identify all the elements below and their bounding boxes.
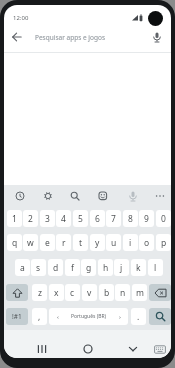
button[interactable]	[70, 191, 80, 201]
staticText: f	[71, 262, 74, 274]
staticText: n	[120, 287, 126, 299]
staticText: c	[70, 287, 75, 299]
button[interactable]: n	[115, 284, 130, 301]
staticText: Português (BR)	[71, 313, 107, 320]
button[interactable]: k	[131, 259, 146, 276]
button[interactable]: b	[99, 284, 114, 301]
button[interactable]	[6, 284, 28, 301]
staticText: l	[154, 262, 157, 274]
staticText: j	[120, 262, 123, 274]
button[interactable]: j	[114, 259, 129, 276]
button[interactable]: v	[82, 284, 97, 301]
staticText: 8	[128, 213, 133, 225]
button[interactable]	[155, 191, 165, 201]
staticText: ‹	[57, 313, 59, 321]
button[interactable]: t	[73, 234, 88, 251]
button[interactable]: o	[139, 234, 154, 251]
staticText: 1	[12, 213, 17, 225]
button[interactable]: g	[81, 259, 96, 276]
staticText: ›	[119, 313, 121, 321]
staticText: Pesquisar apps e jogos	[35, 33, 105, 42]
staticText: y	[95, 237, 100, 249]
button[interactable]: 7	[106, 210, 121, 227]
button[interactable]: i	[123, 234, 138, 251]
button[interactable]: f	[65, 259, 80, 276]
button[interactable]: m	[132, 284, 147, 301]
staticText: o	[144, 237, 150, 249]
button[interactable]: 9	[139, 210, 154, 227]
button[interactable]: 6	[90, 210, 105, 227]
staticText: w	[27, 237, 34, 249]
staticText: r	[62, 237, 66, 249]
button[interactable]: y	[90, 234, 105, 251]
staticText: 4	[61, 213, 66, 225]
button[interactable]: p	[156, 234, 171, 251]
button[interactable]: q	[7, 234, 22, 251]
button[interactable]: h	[98, 259, 113, 276]
button[interactable]: z	[32, 284, 47, 301]
button[interactable]	[154, 345, 166, 354]
staticText: 5	[78, 213, 83, 225]
staticText: 0	[161, 213, 166, 225]
button[interactable]	[15, 191, 25, 201]
button[interactable]: s	[31, 259, 46, 276]
button[interactable]: !#1	[6, 308, 28, 325]
staticText: 12:00	[13, 14, 29, 22]
staticText: k	[136, 262, 141, 274]
staticText: p	[161, 237, 167, 249]
button[interactable]: 1	[7, 210, 22, 227]
button[interactable]: .	[131, 308, 146, 325]
button[interactable]: 0	[156, 210, 171, 227]
button[interactable]	[83, 344, 93, 354]
staticText: g	[86, 262, 92, 274]
button[interactable]: w	[23, 234, 38, 251]
staticText: 7	[111, 213, 116, 225]
staticText: x	[54, 287, 59, 299]
button[interactable]: 2	[23, 210, 38, 227]
button[interactable]: Português (BR)	[49, 308, 128, 325]
button[interactable]	[37, 344, 47, 354]
button[interactable]: ,	[32, 308, 47, 325]
staticText: q	[12, 237, 18, 249]
staticText: e	[45, 237, 50, 249]
staticText: 2	[28, 213, 33, 225]
button[interactable]: r	[56, 234, 71, 251]
staticText: .	[137, 311, 140, 323]
staticText: m	[136, 287, 144, 299]
button[interactable]: 3	[40, 210, 55, 227]
button[interactable]	[128, 191, 138, 202]
staticText: 9	[144, 213, 149, 225]
button[interactable]	[12, 32, 22, 42]
button[interactable]: 4	[56, 210, 71, 227]
button[interactable]	[149, 284, 171, 301]
staticText: b	[104, 287, 110, 299]
staticText: h	[103, 262, 109, 274]
button[interactable]: a	[15, 259, 30, 276]
staticText: u	[111, 237, 117, 249]
staticText: t	[79, 237, 83, 249]
button[interactable]	[128, 344, 138, 354]
staticText: !#1	[12, 312, 22, 321]
staticText: v	[87, 287, 92, 299]
staticText: a	[20, 262, 25, 274]
button[interactable]	[4, 28, 171, 52]
button[interactable]: x	[49, 284, 64, 301]
button[interactable]: 5	[73, 210, 88, 227]
button[interactable]	[152, 32, 162, 43]
staticText: s	[36, 262, 41, 274]
button[interactable]: 8	[123, 210, 138, 227]
button[interactable]: l	[148, 259, 163, 276]
staticText: z	[38, 287, 42, 299]
button[interactable]: u	[106, 234, 121, 251]
button[interactable]: d	[48, 259, 63, 276]
button[interactable]	[43, 191, 53, 201]
staticText: 6	[95, 213, 100, 225]
staticText: ,	[38, 311, 41, 323]
button[interactable]	[149, 308, 171, 325]
staticText: 3	[45, 213, 50, 225]
staticText: d	[53, 262, 59, 274]
staticText: i	[129, 237, 132, 249]
button[interactable]: e	[40, 234, 55, 251]
button[interactable]	[98, 191, 108, 201]
button[interactable]: c	[65, 284, 80, 301]
